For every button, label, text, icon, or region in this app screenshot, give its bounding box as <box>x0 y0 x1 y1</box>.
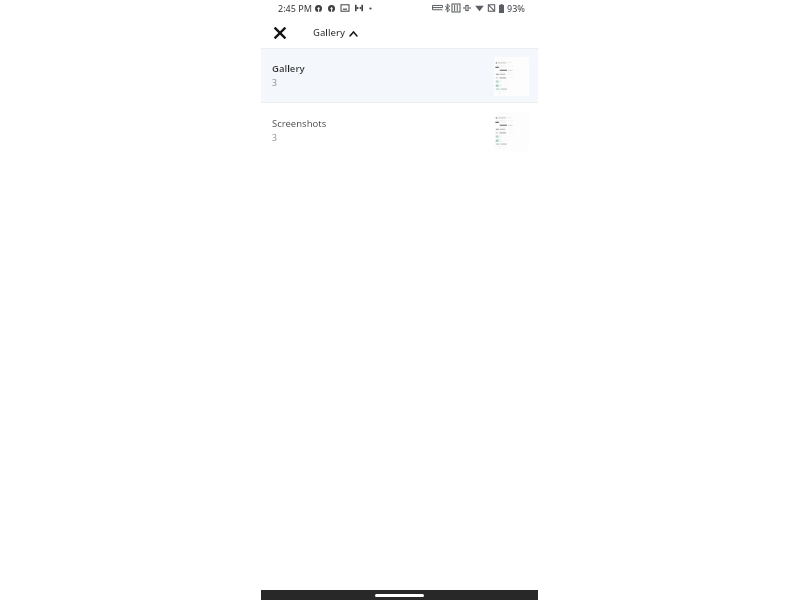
staticText: Screenshots <box>272 117 327 130</box>
staticText: 3 <box>272 132 277 144</box>
staticText: Gallery <box>272 62 305 75</box>
staticText: 2:45 PM <box>278 2 312 14</box>
staticText: 93% <box>507 2 525 14</box>
button[interactable]: Screenshots <box>261 103 538 158</box>
staticText: 3 <box>272 77 277 89</box>
button[interactable]: Close <box>265 18 295 48</box>
staticText: Gallery <box>313 26 345 39</box>
button[interactable]: Gallery <box>307 22 364 43</box>
button[interactable]: Gallery <box>261 48 538 103</box>
